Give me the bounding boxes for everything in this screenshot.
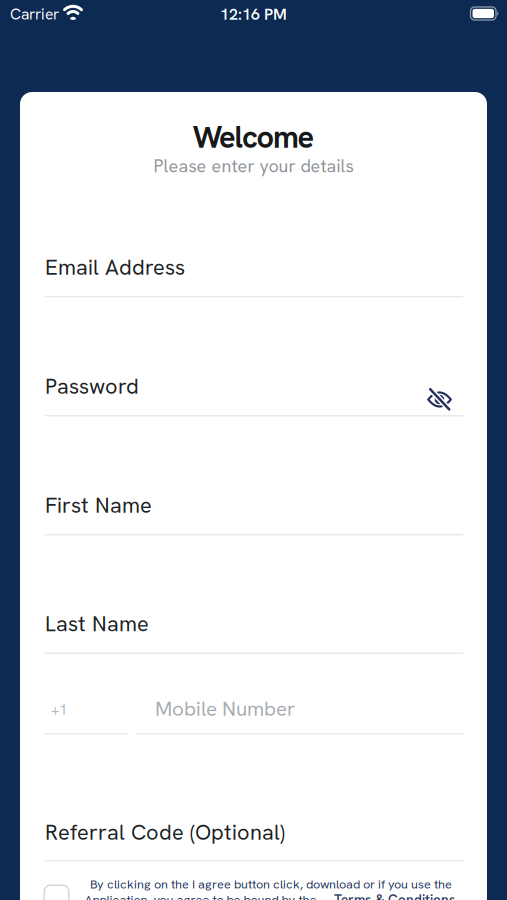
staticText: Password — [45, 372, 139, 400]
staticText: Last Name — [45, 609, 149, 638]
staticText: Referral Code (Optional) — [45, 818, 285, 846]
staticText: Carrier — [10, 4, 59, 24]
staticText: Mobile Number — [155, 695, 295, 722]
staticText: First Name — [45, 491, 152, 519]
button[interactable]: Email Address — [45, 253, 463, 299]
button[interactable]: Show password — [427, 389, 452, 410]
staticText: 12:16 PM — [220, 3, 287, 25]
button[interactable]: Last Name — [45, 609, 463, 655]
button[interactable]: First Name — [45, 491, 463, 537]
button[interactable]: I agree — [44, 885, 69, 900]
staticText: +1 — [51, 700, 67, 720]
staticText: Welcome — [192, 117, 314, 157]
staticText: Please enter your details — [153, 154, 353, 178]
staticText: Terms & Conditions — [334, 891, 455, 900]
button[interactable]: Password — [45, 372, 463, 418]
staticText: Application, you agree to be bound by th… — [84, 891, 316, 900]
button[interactable]: Terms & Conditions — [334, 891, 455, 900]
staticText: Email Address — [45, 253, 185, 281]
staticText: By clicking on the I agree button click,… — [90, 876, 452, 892]
button[interactable]: +1 — [45, 695, 463, 735]
button[interactable]: Referral Code (Optional) — [45, 821, 463, 867]
